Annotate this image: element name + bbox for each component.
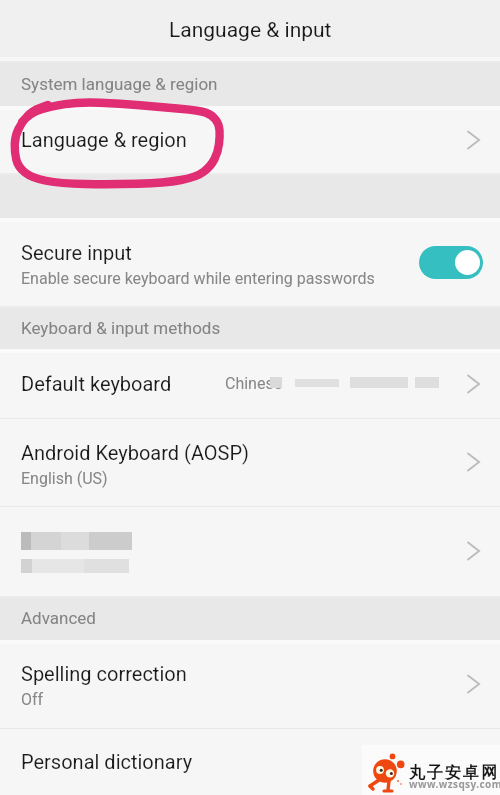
- button[interactable]: Personal dictionary: [0, 728, 500, 795]
- staticText: Secure input: [21, 241, 132, 264]
- staticText: www.wzsqsy.com: [409, 777, 500, 791]
- staticText: Advanced: [21, 608, 96, 628]
- staticText: English (US): [21, 469, 108, 488]
- button[interactable]: Spelling correction: [0, 640, 500, 728]
- button[interactable]: Android Keyboard (AOSP): [0, 418, 500, 506]
- staticText: Language & input: [169, 18, 332, 43]
- button[interactable]: Language & region: [0, 106, 500, 173]
- staticText: Personal dictionary: [21, 750, 481, 773]
- button[interactable]: [0, 506, 500, 596]
- staticText: Enable secure keyboard while entering pa…: [21, 269, 375, 288]
- staticText: 丸子安卓网: [408, 763, 498, 783]
- staticText: Off: [21, 690, 44, 709]
- staticText: Default keyboard: [21, 372, 172, 395]
- staticText: Chinese: [225, 374, 283, 393]
- staticText: Android Keyboard (AOSP): [21, 441, 250, 464]
- staticText: Language & region: [21, 128, 457, 151]
- staticText: System language & region: [21, 74, 218, 94]
- staticText: Spelling correction: [21, 662, 187, 685]
- button[interactable]: Secure input toggle: [419, 246, 483, 279]
- button[interactable]: Secure input: [0, 218, 500, 306]
- button[interactable]: Default keyboard: [0, 349, 500, 418]
- staticText: Keyboard & input methods: [21, 318, 221, 338]
